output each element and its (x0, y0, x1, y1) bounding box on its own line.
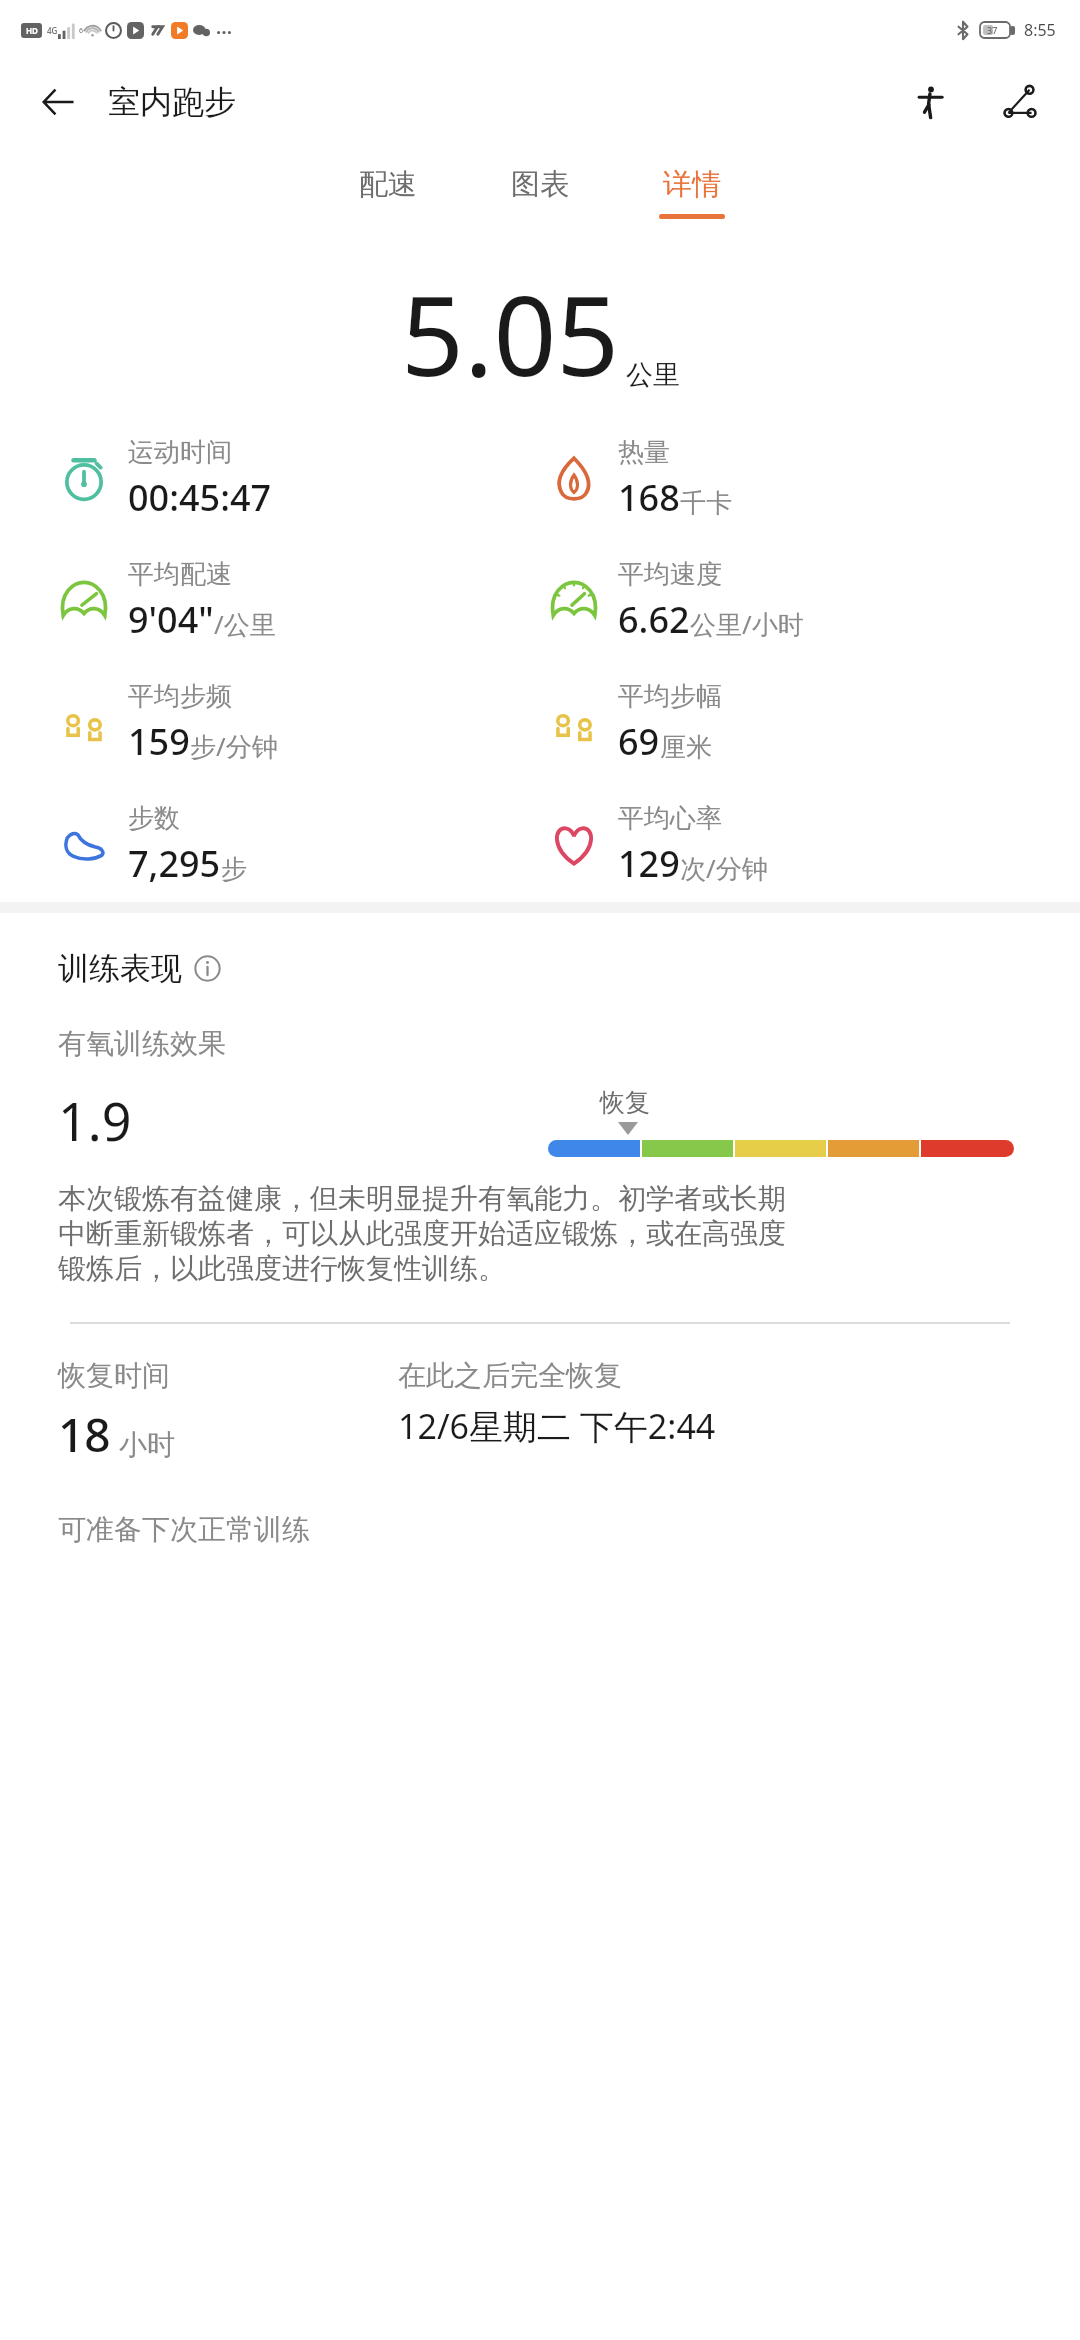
staticText: 平均心率 (618, 802, 722, 835)
staticText: 公里/小时 (690, 606, 804, 642)
staticText: 有氧训练效果 (58, 1026, 226, 1061)
staticText: /公里 (214, 606, 276, 642)
staticText: 步/分钟 (190, 728, 278, 764)
staticText: 4G (47, 25, 58, 36)
staticText: 平均步频 (128, 680, 232, 713)
staticText: 6 (79, 26, 84, 36)
staticText: 千卡 (680, 487, 732, 520)
staticText: 可准备下次正常训练 (58, 1512, 310, 1547)
staticText: 在此之后完全恢复 (398, 1358, 622, 1393)
staticText: 恢复时间 (58, 1358, 170, 1393)
staticText: 步数 (128, 802, 180, 835)
staticText: 00:45:47 (128, 473, 272, 522)
other: Info (194, 955, 221, 982)
button[interactable]: 平均配速 (58, 558, 540, 644)
staticText: 锻炼后，以此强度进行恢复性训练。 (58, 1251, 506, 1286)
button[interactable]: 平均步幅 (548, 680, 1080, 766)
staticText: 12/6星期二 下午2:44 (398, 1403, 716, 1449)
staticText: 公里 (626, 358, 680, 392)
button[interactable]: 热量 (548, 436, 1080, 522)
staticText: 37 (987, 24, 998, 36)
button[interactable]: 配速 (341, 160, 435, 225)
staticText: 1.9 (58, 1085, 132, 1156)
staticText: 18 (58, 1403, 111, 1466)
button[interactable]: 训练表现 (58, 949, 221, 988)
staticText: HD (26, 25, 38, 36)
staticText: 厘米 (660, 731, 712, 764)
staticText: 5.05 (401, 258, 620, 408)
staticText: 运动时间 (128, 436, 232, 469)
staticText: 本次锻炼有益健康，但未明显提升有氧能力。初学者或长期 (58, 1181, 786, 1216)
button[interactable]: 详情 (645, 160, 739, 225)
staticText: 小时 (119, 1427, 175, 1462)
staticText: 168 (618, 473, 680, 522)
staticText: 恢复 (600, 1087, 650, 1118)
staticText: 热量 (618, 436, 670, 469)
button[interactable]: 平均心率 (548, 802, 1080, 888)
staticText: 中断重新锻炼者，可以从此强度开始适应锻炼，或在高强度 (58, 1216, 786, 1251)
button[interactable]: Back (30, 74, 86, 130)
staticText: 平均速度 (618, 558, 722, 591)
staticText: 训练表现 (58, 949, 182, 988)
button[interactable]: 运动时间 (58, 436, 540, 522)
staticText: 129 (618, 839, 680, 888)
staticText: 详情 (663, 166, 721, 203)
button[interactable]: Workout type (902, 72, 962, 132)
staticText: 69 (618, 717, 660, 766)
staticText: 室内跑步 (108, 82, 236, 122)
staticText: 6.62 (618, 595, 690, 644)
button[interactable]: 步数 (58, 802, 540, 888)
staticText: 次/分钟 (680, 850, 768, 886)
staticText: 平均步幅 (618, 680, 722, 713)
button[interactable]: 图表 (493, 160, 587, 225)
staticText: 9'04" (128, 595, 214, 644)
staticText: 159 (128, 717, 190, 766)
button[interactable]: 平均步频 (58, 680, 540, 766)
staticText: 步 (221, 853, 247, 886)
button[interactable]: Share (990, 72, 1050, 132)
staticText: 图表 (511, 166, 569, 203)
staticText: 平均配速 (128, 558, 232, 591)
staticText: 8:55 (1024, 19, 1056, 41)
button[interactable]: 平均速度 (548, 558, 1080, 644)
staticText: 配速 (359, 166, 417, 203)
staticText: 7,295 (128, 839, 221, 888)
